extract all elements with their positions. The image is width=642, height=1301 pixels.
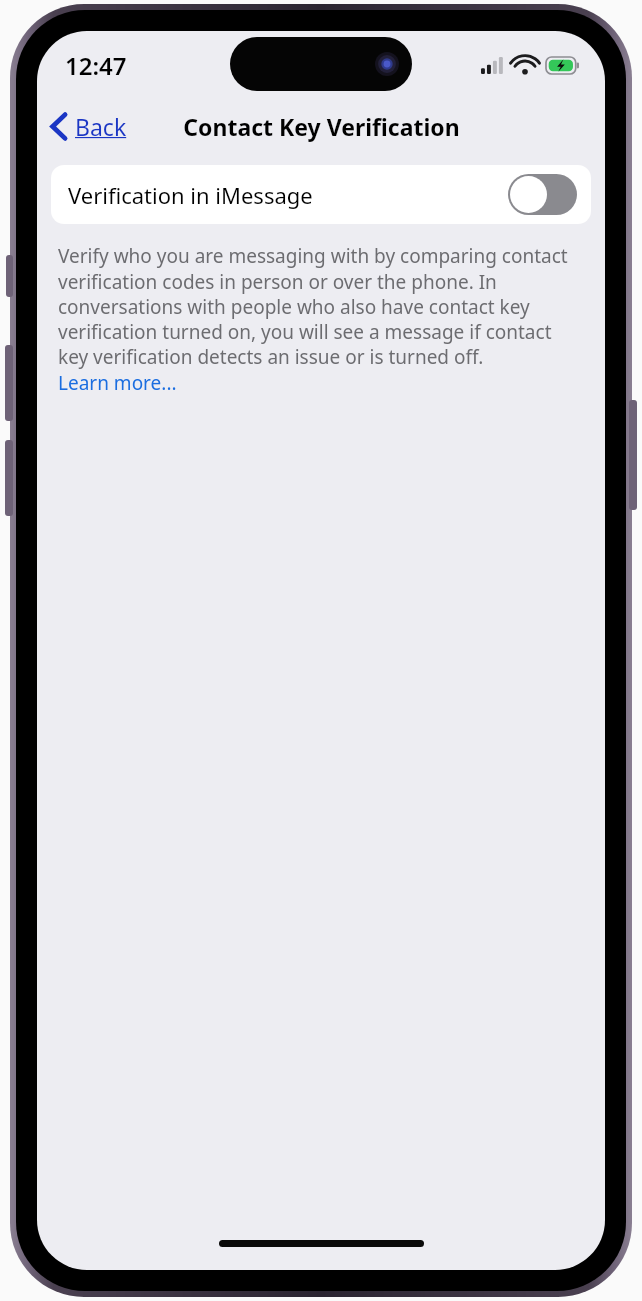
staticText: Contact Key Verification: [183, 111, 460, 142]
staticText: Verification in iMessage: [68, 180, 313, 210]
staticText: 12:47: [65, 49, 127, 82]
staticText: Verify who you are messaging with by com…: [58, 243, 584, 369]
button[interactable]: Learn more...: [58, 369, 177, 396]
button[interactable]: Verification in iMessage: [51, 165, 591, 224]
button[interactable]: Back: [45, 107, 133, 146]
staticText: Back: [75, 111, 127, 142]
button[interactable]: Verification in iMessage toggle, off: [508, 174, 577, 215]
